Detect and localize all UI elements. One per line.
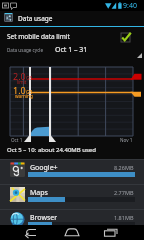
staticText: 9:40: [123, 1, 137, 11]
button[interactable]: Browser: [0, 209, 144, 225]
staticText: 8.26MB: [114, 164, 134, 171]
staticText: Oct 1: [11, 137, 23, 143]
button[interactable]: Google+: [0, 159, 144, 184]
staticText: Maps: [30, 188, 48, 198]
staticText: Data usage: [18, 14, 53, 23]
button[interactable]: Set mobile data limit: [0, 27, 144, 43]
staticText: 1.81MB: [114, 214, 134, 221]
button[interactable]: Data usage cycle: [0, 43, 144, 59]
staticText: Oct 5 – 10: about 24.40MB used: [7, 146, 96, 154]
staticText: Set mobile data limit: [7, 32, 70, 41]
staticText: GB: [26, 75, 33, 81]
staticText: GB: [26, 89, 33, 95]
staticText: Nov 1: [120, 137, 133, 143]
staticText: 1.0: [13, 84, 26, 96]
button[interactable]: Data usage: [0, 11, 144, 27]
staticText: 2.77MB: [114, 189, 134, 196]
button[interactable]: Back: [14, 225, 48, 240]
button[interactable]: Maps: [0, 184, 144, 209]
staticText: Browser: [30, 213, 58, 223]
staticText: Data usage cycle: [7, 47, 44, 53]
button[interactable]: Recent apps: [96, 225, 130, 240]
button[interactable]: Home: [55, 225, 89, 240]
staticText: Google+: [30, 163, 58, 173]
staticText: limit: [17, 79, 27, 85]
staticText: 2.0: [13, 70, 26, 82]
staticText: Oct 1 – 31: [55, 45, 88, 55]
staticText: warning: [15, 93, 33, 99]
